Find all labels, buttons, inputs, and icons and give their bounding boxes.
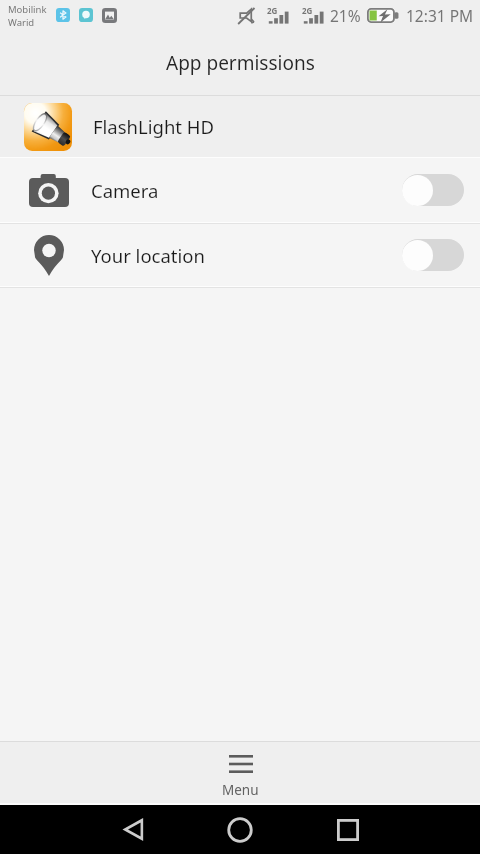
button[interactable]: Recent apps (325, 805, 371, 854)
staticText: Warid (8, 16, 35, 29)
staticText: Your location (91, 243, 205, 268)
button[interactable]: Back (110, 805, 156, 854)
staticText: 2G (267, 5, 278, 16)
button[interactable]: Toggle permission (402, 239, 464, 271)
button[interactable]: Home (217, 805, 263, 854)
button[interactable]: FlashLight HD (0, 96, 480, 157)
button[interactable]: Menu (196, 742, 285, 803)
staticText: Camera (91, 178, 159, 203)
staticText: 21% (330, 5, 361, 26)
staticText: App permissions (166, 50, 315, 76)
staticText: Menu (222, 781, 259, 795)
staticText: 2G (302, 5, 313, 16)
button[interactable]: Camera (0, 158, 480, 222)
button[interactable]: Your location (0, 224, 480, 286)
staticText: 12:31 PM (406, 5, 474, 26)
button[interactable]: Toggle permission (402, 174, 464, 206)
staticText: FlashLight HD (93, 114, 215, 139)
staticText: Mobilink (8, 3, 47, 16)
